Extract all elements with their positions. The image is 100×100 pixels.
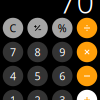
button[interactable]: 4 — [3, 66, 23, 86]
staticText: 2 — [35, 93, 41, 100]
button[interactable]: 7 — [3, 42, 23, 62]
button[interactable]: 5 — [27, 66, 48, 86]
staticText: 6 — [59, 69, 65, 83]
staticText: 5 — [35, 69, 41, 83]
button[interactable]: 6 — [52, 66, 72, 86]
button[interactable]: 3 — [52, 90, 72, 100]
button[interactable]: Toggle sign — [27, 18, 48, 38]
staticText: 70 — [58, 0, 94, 22]
button[interactable]: Add — [77, 90, 97, 100]
button[interactable]: Divide — [77, 18, 97, 38]
staticText: 1 — [10, 93, 16, 100]
staticText: 3 — [59, 93, 65, 100]
button[interactable]: % — [52, 18, 72, 38]
staticText: 9 — [59, 45, 65, 59]
staticText: % — [58, 21, 67, 35]
staticText: C — [9, 21, 16, 35]
staticText: 8 — [35, 45, 41, 59]
staticText: 7 — [10, 45, 16, 59]
button[interactable]: C — [3, 18, 23, 38]
button[interactable]: 2 — [27, 90, 48, 100]
button[interactable]: 8 — [27, 42, 48, 62]
button[interactable]: Multiply — [77, 42, 97, 62]
button[interactable]: Subtract — [77, 66, 97, 86]
button[interactable]: 9 — [52, 42, 72, 62]
staticText: 4 — [10, 69, 16, 83]
button[interactable]: 1 — [3, 90, 23, 100]
